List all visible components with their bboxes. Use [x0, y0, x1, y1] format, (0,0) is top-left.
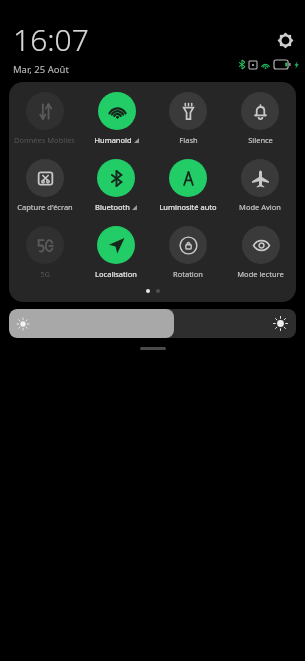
staticText: 5G — [40, 269, 50, 279]
button[interactable]: Flash — [168, 90, 208, 147]
button[interactable]: Silence — [240, 90, 280, 147]
staticText: Luminosité auto — [159, 202, 217, 212]
button[interactable]: Humanoid — [93, 90, 140, 147]
staticText: 16:07 — [13, 19, 89, 60]
button[interactable]: Luminosité auto — [158, 157, 218, 214]
staticText: Bluetooth — [95, 202, 130, 212]
button[interactable]: Mode lecture — [236, 224, 285, 281]
staticText: Capture d'écran — [17, 202, 73, 212]
button[interactable]: Settings — [273, 28, 297, 52]
button[interactable]: Mode Avion — [238, 157, 282, 214]
button[interactable]: Localisation — [94, 224, 138, 281]
staticText: Données Mobiles — [14, 135, 75, 145]
staticText: Localisation — [95, 269, 137, 279]
button[interactable]: Capture d'écran — [16, 157, 74, 214]
button[interactable]: Bluetooth — [94, 157, 138, 214]
button[interactable]: 5G — [25, 224, 65, 281]
button[interactable]: Rotation — [168, 224, 208, 281]
staticText: Flash — [179, 135, 198, 145]
staticText: Mode Avion — [239, 202, 281, 212]
staticText: Silence — [248, 135, 273, 145]
staticText: Mode lecture — [237, 269, 284, 279]
staticText: Mar, 25 Août — [13, 63, 69, 74]
button[interactable]: Données Mobiles — [13, 90, 76, 147]
staticText: Rotation — [173, 269, 203, 279]
staticText: Humanoid — [94, 135, 132, 145]
button[interactable]: Brightness — [9, 309, 296, 338]
